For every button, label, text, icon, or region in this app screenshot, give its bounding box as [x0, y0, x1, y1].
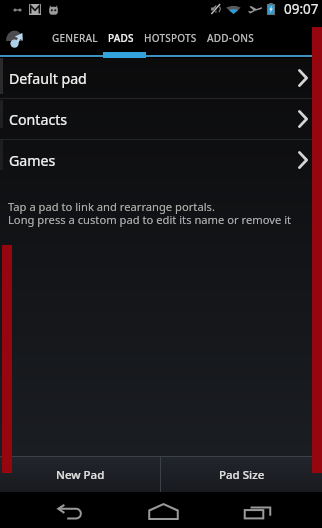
button[interactable]: Games [0, 140, 322, 180]
staticText: Pad Size [219, 467, 265, 483]
button[interactable]: GENERAL [47, 18, 103, 58]
button[interactable]: HOTSPOTS [139, 18, 202, 58]
staticText: 09:07 [284, 0, 319, 18]
button[interactable]: Contacts [0, 99, 322, 139]
button[interactable]: Back [0, 492, 108, 528]
button[interactable]: Home [108, 492, 215, 528]
staticText: Tap a pad to link and rearrange portals.… [8, 199, 292, 228]
button[interactable]: Default pad [0, 58, 322, 98]
staticText: GENERAL [52, 31, 98, 45]
button[interactable]: ADD-ONS [202, 18, 259, 58]
staticText: Contacts [9, 110, 68, 129]
button[interactable]: Recents [215, 492, 322, 528]
button[interactable]: New Pad [0, 457, 160, 492]
button[interactable]: PADS [103, 18, 139, 58]
staticText: Default pad [9, 69, 87, 88]
staticText: New Pad [56, 467, 105, 483]
button[interactable]: Pad Size [161, 457, 322, 492]
staticText: ADD-ONS [207, 31, 254, 45]
button[interactable]: App icon [0, 18, 47, 58]
staticText: HOTSPOTS [144, 31, 197, 45]
staticText: PADS [108, 31, 134, 45]
staticText: Games [9, 151, 56, 170]
